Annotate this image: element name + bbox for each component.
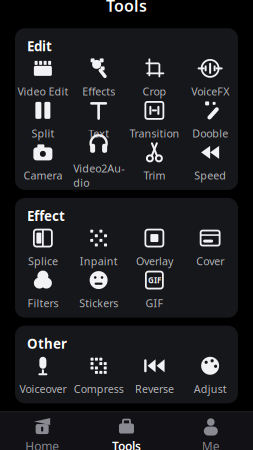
- staticText: Edit: [27, 37, 52, 55]
- button[interactable]: Speed: [182, 141, 238, 183]
- button[interactable]: Splice: [15, 227, 71, 269]
- button[interactable]: Reverse: [126, 354, 182, 396]
- button[interactable]: Home: [0, 412, 84, 450]
- staticText: Dooble: [192, 126, 228, 141]
- button[interactable]: Split: [15, 99, 71, 141]
- staticText: Home: [25, 438, 59, 450]
- button[interactable]: Me: [169, 412, 253, 450]
- staticText: Filters: [27, 296, 58, 310]
- staticText: Video2Audio: [73, 161, 124, 190]
- staticText: Split: [31, 126, 54, 141]
- button[interactable]: Crop: [126, 57, 182, 99]
- staticText: Inpaint: [80, 254, 118, 268]
- staticText: Splice: [28, 254, 58, 268]
- button[interactable]: Video2Audio: [71, 141, 127, 183]
- staticText: Cover: [196, 254, 224, 268]
- button[interactable]: Effects: [71, 57, 127, 99]
- staticText: Text: [88, 126, 109, 141]
- staticText: Compress: [74, 382, 124, 396]
- button[interactable]: VoiceFX: [182, 57, 238, 99]
- staticText: Overlay: [136, 254, 173, 268]
- button[interactable]: Adjust: [182, 354, 238, 396]
- button[interactable]: Stickers: [71, 269, 127, 311]
- button[interactable]: Video Edit: [15, 57, 71, 99]
- button[interactable]: Tools: [84, 412, 169, 450]
- staticText: Reverse: [135, 382, 174, 396]
- button[interactable]: Transition: [126, 99, 182, 141]
- staticText: GIF: [145, 296, 163, 310]
- staticText: Effect: [27, 207, 65, 225]
- button[interactable]: Text: [71, 99, 127, 141]
- staticText: Other: [27, 335, 67, 352]
- staticText: GIF: [148, 275, 161, 285]
- staticText: Adjust: [194, 382, 227, 396]
- button[interactable]: Voiceover: [15, 354, 71, 396]
- staticText: Tools: [112, 438, 141, 450]
- button[interactable]: Overlay: [126, 227, 182, 269]
- staticText: Camera: [23, 168, 62, 183]
- button[interactable]: Cover: [182, 227, 238, 269]
- button[interactable]: Dooble: [182, 99, 238, 141]
- staticText: Effects: [82, 84, 115, 99]
- staticText: Crop: [142, 84, 166, 99]
- button[interactable]: Compress: [71, 354, 127, 396]
- staticText: Voiceover: [19, 382, 66, 396]
- staticText: VoiceFX: [191, 84, 229, 99]
- staticText: Video Edit: [17, 84, 68, 99]
- button[interactable]: Trim: [126, 141, 182, 183]
- staticText: Tools: [106, 0, 147, 16]
- button[interactable]: GIF: [126, 269, 182, 311]
- button[interactable]: Filters: [15, 269, 71, 311]
- staticText: Transition: [129, 126, 179, 141]
- button[interactable]: Camera: [15, 141, 71, 183]
- staticText: Speed: [194, 168, 226, 183]
- staticText: Me: [202, 438, 220, 450]
- staticText: Stickers: [79, 296, 118, 310]
- staticText: Trim: [143, 168, 165, 183]
- button[interactable]: Inpaint: [71, 227, 127, 269]
